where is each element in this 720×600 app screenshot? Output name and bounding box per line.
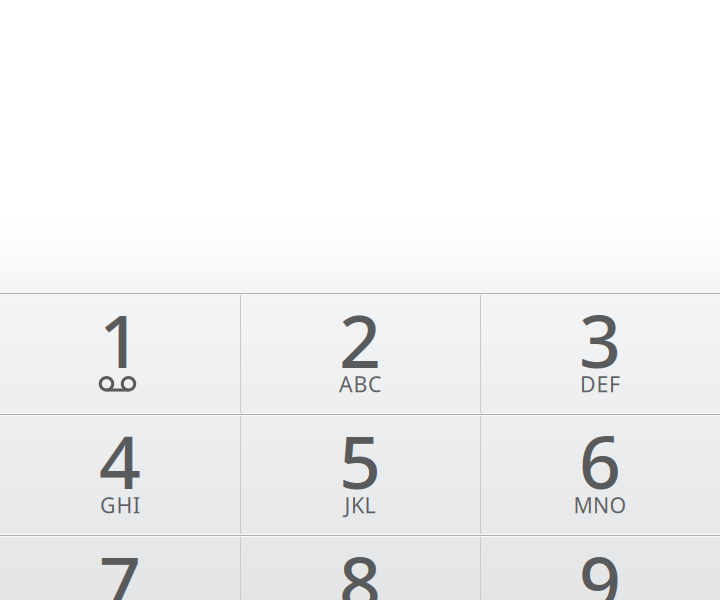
button[interactable]: 2 xyxy=(240,293,480,414)
staticText: GHI xyxy=(100,491,140,519)
staticText: JKL xyxy=(344,491,376,519)
staticText: ABC xyxy=(339,370,381,398)
staticText: 1 xyxy=(99,291,141,388)
staticText: 8 xyxy=(339,533,381,600)
button[interactable]: 1 xyxy=(0,293,240,414)
staticText: MNO xyxy=(573,491,627,519)
staticText: 4 xyxy=(99,412,141,509)
button[interactable]: 3 xyxy=(480,293,720,414)
button[interactable]: 9 xyxy=(480,535,720,600)
staticText: 3 xyxy=(579,291,621,388)
button[interactable]: 7 xyxy=(0,535,240,600)
staticText: 2 xyxy=(339,291,381,388)
staticText: 9 xyxy=(579,533,621,600)
staticText: 5 xyxy=(339,412,381,509)
staticText: 7 xyxy=(99,533,141,600)
button[interactable]: 8 xyxy=(240,535,480,600)
button[interactable]: 6 xyxy=(480,414,720,535)
staticText: DEF xyxy=(580,370,620,398)
button[interactable]: 4 xyxy=(0,414,240,535)
staticText: 6 xyxy=(579,412,621,509)
button[interactable]: 5 xyxy=(240,414,480,535)
